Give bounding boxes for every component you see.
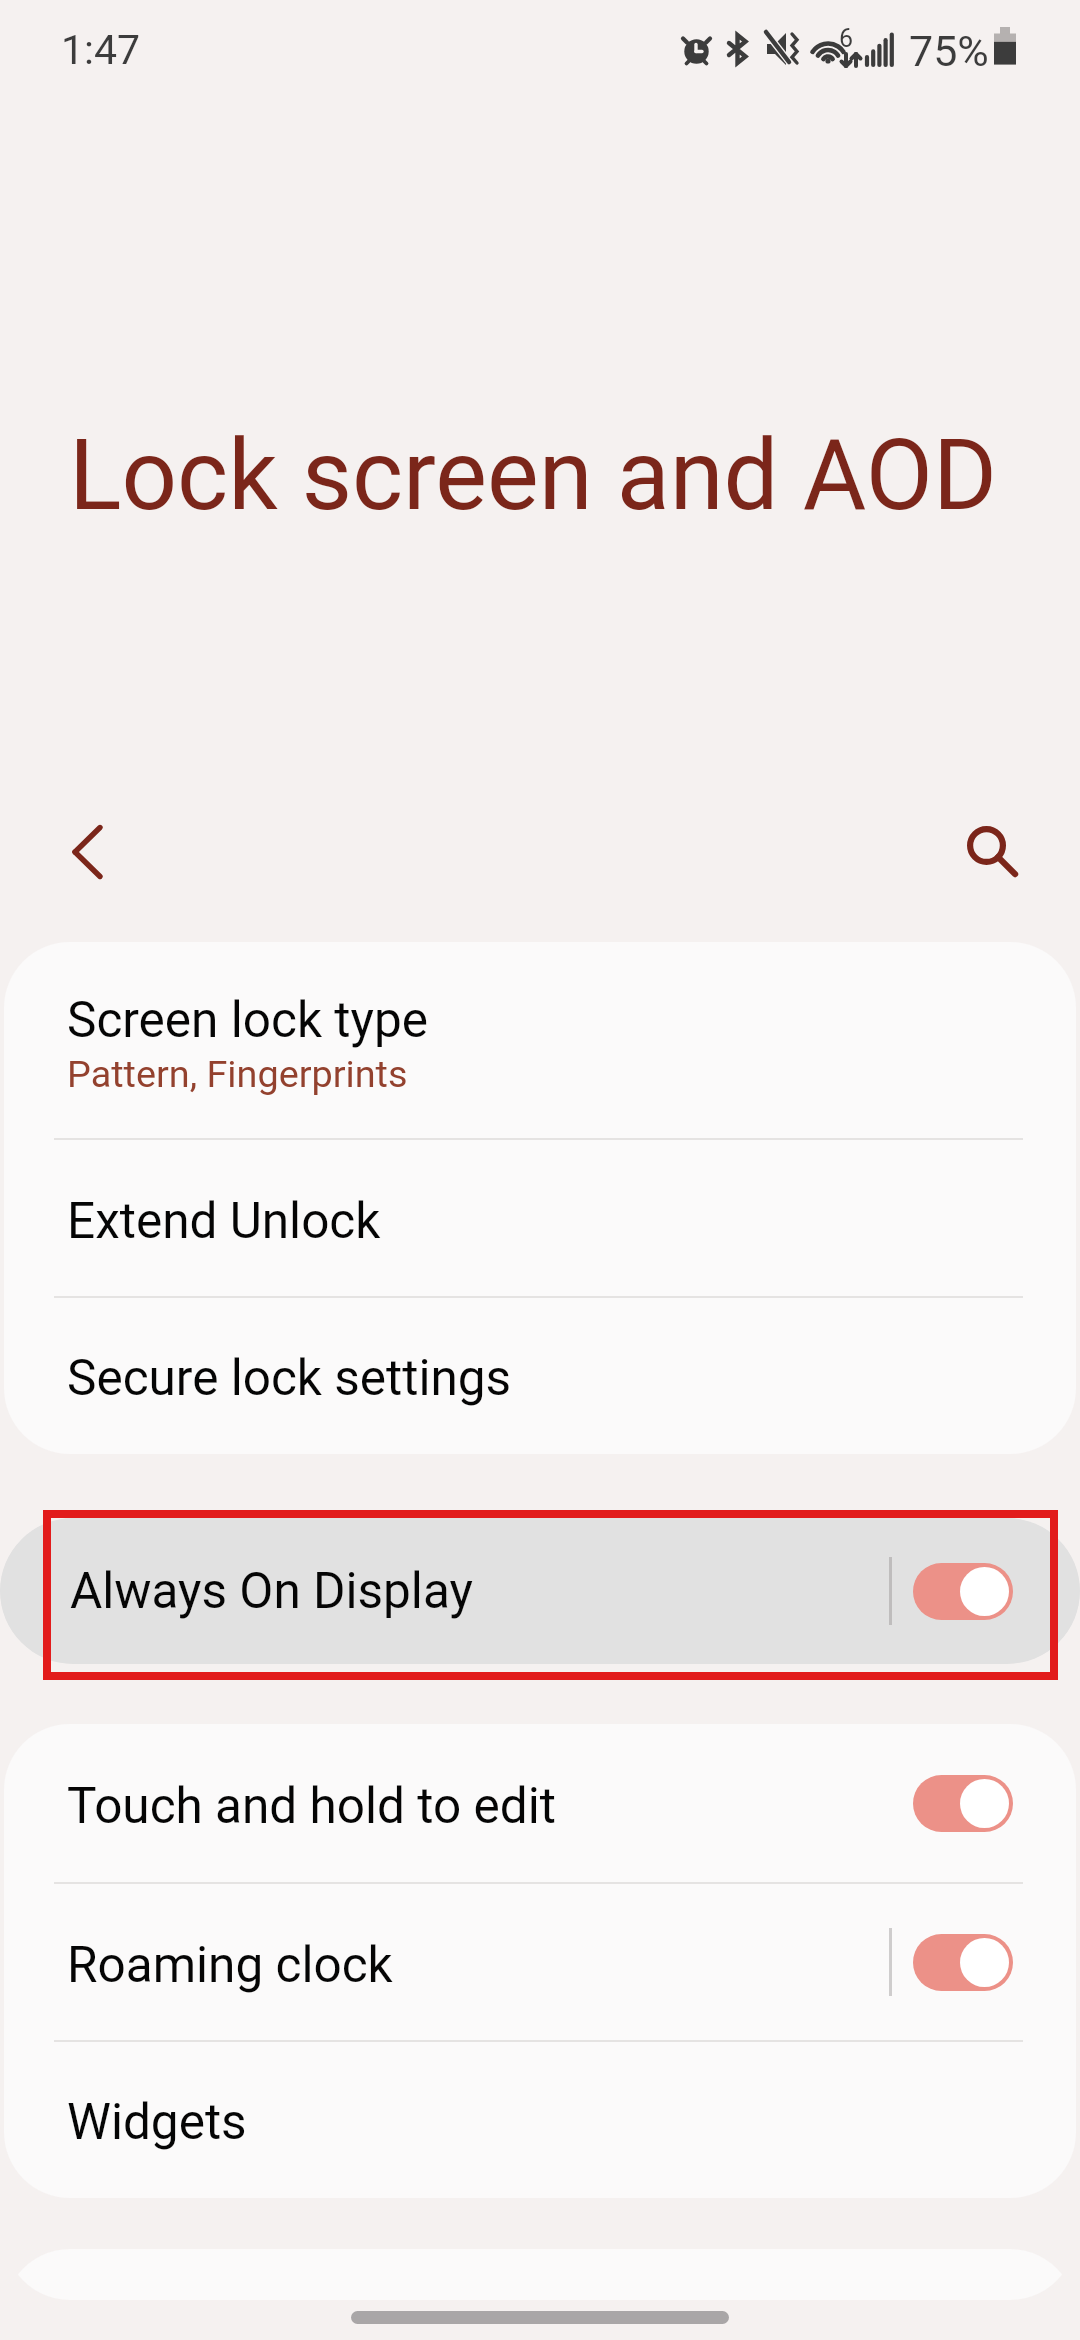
button[interactable]: Secure lock settings	[4, 1298, 1076, 1452]
staticText: 1:47	[61, 26, 141, 74]
button[interactable]: Always On Display	[0, 1518, 1080, 1664]
staticText: Extend Unlock	[67, 1192, 381, 1250]
staticText: Touch and hold to edit	[67, 1777, 556, 1835]
staticText: Screen lock type	[67, 991, 428, 1049]
button[interactable]: Toggle on	[913, 1563, 1013, 1620]
staticText: Secure lock settings	[67, 1349, 512, 1407]
staticText: Lock screen and AOD	[69, 419, 997, 533]
staticText: Widgets	[67, 2093, 247, 2151]
button[interactable]: Touch and hold to edit	[4, 1724, 1076, 1882]
staticText: Roaming clock	[67, 1936, 393, 1994]
button[interactable]: Widgets	[4, 2042, 1076, 2196]
button[interactable]: Roaming clock	[4, 1884, 1076, 2040]
staticText: 6	[839, 24, 854, 53]
button[interactable]: Navigate up	[36, 801, 138, 903]
staticText: Always On Display	[70, 1562, 473, 1620]
button[interactable]: Search	[934, 796, 1036, 898]
staticText: 75%	[909, 26, 989, 76]
button[interactable]: Extend Unlock	[4, 1140, 1076, 1296]
button[interactable]: Toggle on	[913, 1934, 1013, 1991]
staticText: Pattern, Fingerprints	[67, 1052, 408, 1096]
button[interactable]: Toggle on	[913, 1775, 1013, 1832]
button[interactable]: Screen lock type	[4, 942, 1076, 1138]
